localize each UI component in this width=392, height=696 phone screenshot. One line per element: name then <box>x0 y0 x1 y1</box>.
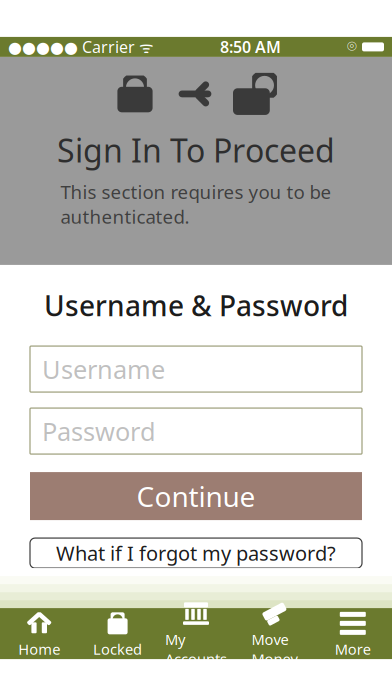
staticText: Locked <box>93 639 142 659</box>
staticText: Continue <box>136 477 255 515</box>
staticText: Home <box>18 639 60 659</box>
button[interactable]: Home <box>0 604 78 663</box>
staticText: My Accounts <box>165 630 227 669</box>
staticText: 8:50 AM <box>220 36 281 57</box>
button[interactable]: Move Money <box>235 595 314 673</box>
button[interactable]: Continue <box>30 472 362 520</box>
button[interactable]: My Accounts <box>157 595 235 673</box>
staticText: Move Money <box>251 630 297 669</box>
staticText: Username <box>42 352 165 386</box>
button[interactable]: Locked <box>78 604 157 663</box>
staticText: What if I forgot my password? <box>56 540 336 566</box>
staticText: More <box>335 639 371 659</box>
staticText: Sign In To Proceed <box>57 129 335 171</box>
staticText: This section requires you to be authenti… <box>60 179 331 229</box>
staticText: ⌾ <box>347 39 357 55</box>
button[interactable]: What if I forgot my password? <box>30 538 362 568</box>
staticText: Password <box>42 414 156 448</box>
button[interactable]: More <box>314 604 392 663</box>
staticText: Username & Password <box>44 287 348 324</box>
staticText: ●●●●● Carrier ᯤ <box>8 36 154 57</box>
